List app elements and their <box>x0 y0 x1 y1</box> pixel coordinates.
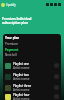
staticText: Artist name <box>13 97 30 100</box>
staticText: Playlist three <box>13 84 32 88</box>
staticText: Playlist four <box>13 93 30 97</box>
staticText: Payment <box>5 48 19 52</box>
staticText: Spotify <box>6 3 16 7</box>
staticText: Artist name <box>13 66 30 70</box>
staticText: Next bill <box>5 53 17 57</box>
button[interactable]: Playlist four <box>3 93 61 100</box>
staticText: Playlist two <box>13 73 29 77</box>
staticText: Artist name <box>13 77 30 81</box>
button[interactable]: Playlist three <box>3 82 61 93</box>
staticText: Playlist one <box>13 62 30 66</box>
staticText: Premium <box>5 42 18 46</box>
staticText: Your plan <box>5 36 20 40</box>
button[interactable]: Playlist two <box>3 71 61 82</box>
staticText: Premium Individual subscription plan <box>2 17 32 25</box>
staticText: Artist name <box>13 88 30 92</box>
button[interactable]: Playlist one <box>3 60 61 71</box>
